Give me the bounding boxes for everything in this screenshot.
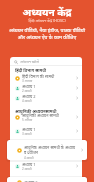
button[interactable]: अध्याय 1 xyxy=(10,126,82,136)
button[interactable]: अध्ययन खोजें xyxy=(10,57,82,65)
staticText: 4 सामग्री xyxy=(22,99,32,103)
button[interactable]: आधुनिकी अध्ययन सामग्री xyxy=(10,112,82,122)
button[interactable]: हिंदी विभाग की सामग्री xyxy=(10,73,82,83)
button[interactable]: आधुनिक अध्ययन सामग्री के अध्याय व प्रयोज… xyxy=(7,140,87,160)
staticText: 3 अध्याय xyxy=(22,79,33,83)
staticText: 2 सामग्री xyxy=(22,89,32,93)
staticText: अध्याय 1 xyxy=(22,127,36,132)
staticText: 5 अध्याय xyxy=(22,118,33,122)
staticText: आधुनिक अध्ययन सामग्री के अध्याय व प्रयोज… xyxy=(24,145,76,155)
staticText: हिंदी अध्ययन केंद्र (HDSC) xyxy=(0,18,94,23)
staticText: अध्याय 2 xyxy=(22,94,36,99)
staticText: अध्ययन खोजें xyxy=(20,59,39,64)
staticText: अध्ययन वीडियो, नैया इंडीज, पाठक वीडियो औ… xyxy=(7,27,87,41)
staticText: आधुनिकी अध्ययन सामग्री xyxy=(22,113,59,118)
staticText: 2 सामग्री xyxy=(22,167,32,171)
staticText: अध्याय 2 xyxy=(24,180,38,182)
button[interactable]: अध्याय 1 xyxy=(10,83,82,93)
button[interactable]: अध्याय 2 xyxy=(10,93,82,103)
staticText: हिंदी विभाग की सामग्री xyxy=(22,74,55,79)
button[interactable]: अध्याय 2 xyxy=(7,177,87,182)
staticText: अध्याय 1 xyxy=(22,84,36,89)
staticText: अध्याय 1 xyxy=(22,162,36,167)
staticText: अध्ययन केंद्र xyxy=(0,5,94,19)
button[interactable]: अध्याय 1 xyxy=(10,161,82,171)
staticText: हिंदी विभाग सामग्री xyxy=(15,68,47,74)
staticText: 4 सामग्री xyxy=(24,156,34,160)
staticText: आधुनिकी अध्ययनसामग्री xyxy=(15,109,57,115)
staticText: 3 सामग्री xyxy=(22,132,32,136)
